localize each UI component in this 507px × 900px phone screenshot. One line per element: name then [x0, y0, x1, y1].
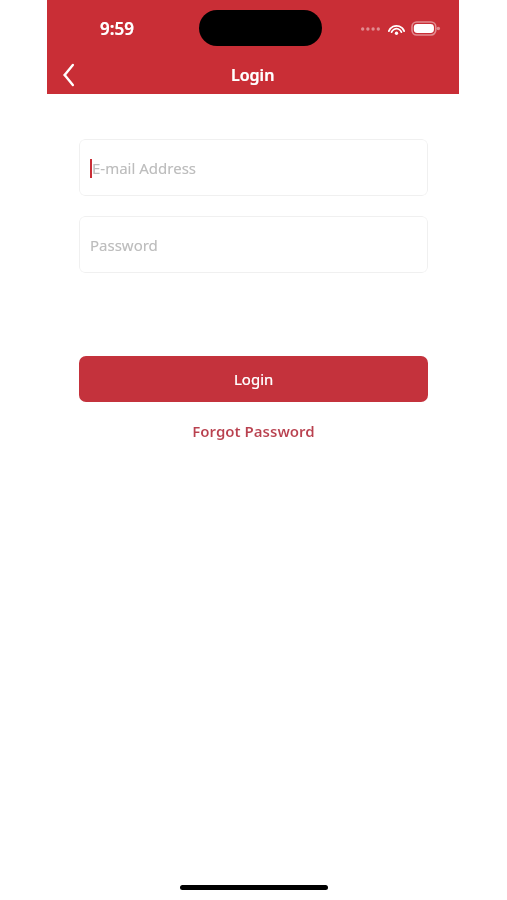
staticText: Password: [90, 235, 158, 255]
staticText: Login: [231, 64, 275, 86]
staticText: E-mail Address: [92, 158, 197, 178]
staticText: Forgot Password: [192, 421, 315, 441]
button[interactable]: Password: [79, 216, 428, 273]
staticText: 9:59: [100, 17, 134, 40]
staticText: Login: [234, 369, 274, 389]
button[interactable]: Forgot Password: [79, 415, 428, 447]
button[interactable]: Login: [79, 356, 428, 402]
button[interactable]: E-mail Address: [79, 139, 428, 196]
button[interactable]: Back: [47, 56, 91, 94]
